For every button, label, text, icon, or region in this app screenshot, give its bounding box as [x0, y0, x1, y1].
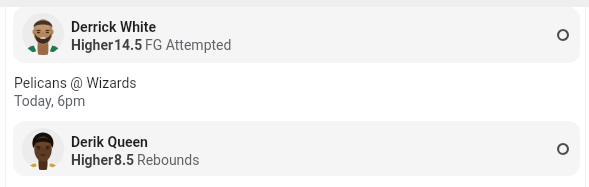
staticText: Derrick White: [71, 19, 156, 35]
button[interactable]: Derik Queen: [13, 121, 580, 176]
staticText: Today, 6pm: [14, 93, 86, 109]
staticText: Rebounds: [137, 152, 200, 168]
staticText: Higher: [71, 37, 114, 53]
button[interactable]: Select Derik Queen Higher 8.5 Rebounds: [550, 136, 576, 162]
staticText: Derik Queen: [71, 134, 148, 150]
button[interactable]: Select Derrick White Higher 14.5 FG Atte…: [550, 22, 576, 48]
staticText: Higher: [71, 152, 114, 168]
staticText: FG Attempted: [145, 37, 232, 53]
staticText: 8.5: [114, 152, 135, 168]
staticText: 14.5: [114, 37, 143, 53]
button[interactable]: Derrick White: [13, 7, 580, 63]
staticText: Pelicans @ Wizards: [14, 75, 137, 91]
